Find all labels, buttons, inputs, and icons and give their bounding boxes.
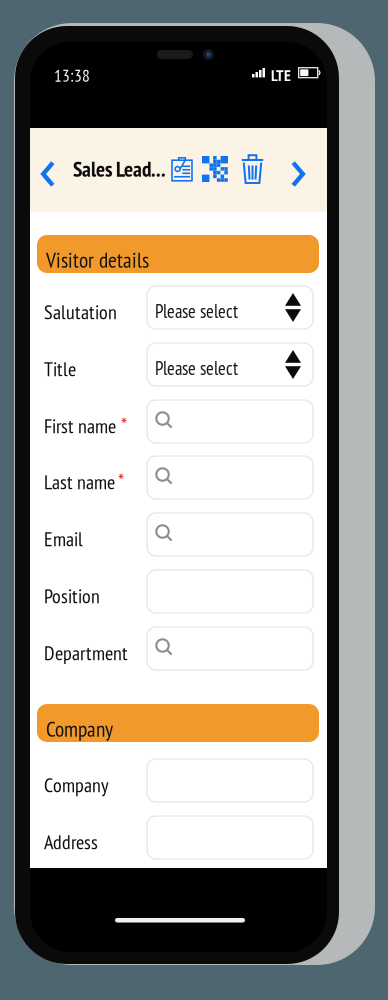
button[interactable]: Next	[283, 154, 313, 194]
staticText: Email	[44, 526, 83, 552]
staticText: Company	[46, 715, 113, 743]
staticText: Company	[44, 772, 109, 798]
staticText: First name	[44, 413, 116, 439]
staticText: Sales Lead...	[73, 155, 166, 183]
button[interactable]: Delete	[241, 154, 264, 184]
staticText: 13:38	[54, 64, 90, 86]
staticText: Address	[44, 829, 98, 855]
staticText: Last name	[44, 469, 115, 495]
staticText: Salutation	[44, 299, 117, 325]
staticText: Visitor details	[46, 246, 149, 274]
staticText: Please select	[155, 299, 238, 323]
staticText: *	[121, 411, 127, 439]
staticText: Title	[44, 356, 76, 382]
button[interactable]: Business card	[171, 157, 193, 182]
staticText: LTE	[271, 65, 291, 86]
button[interactable]: Back	[33, 154, 63, 194]
staticText: *	[118, 467, 124, 495]
staticText: Position	[44, 583, 100, 609]
staticText: Please select	[155, 356, 238, 380]
button[interactable]: Scan QR code	[202, 156, 228, 182]
staticText: Department	[44, 640, 128, 666]
